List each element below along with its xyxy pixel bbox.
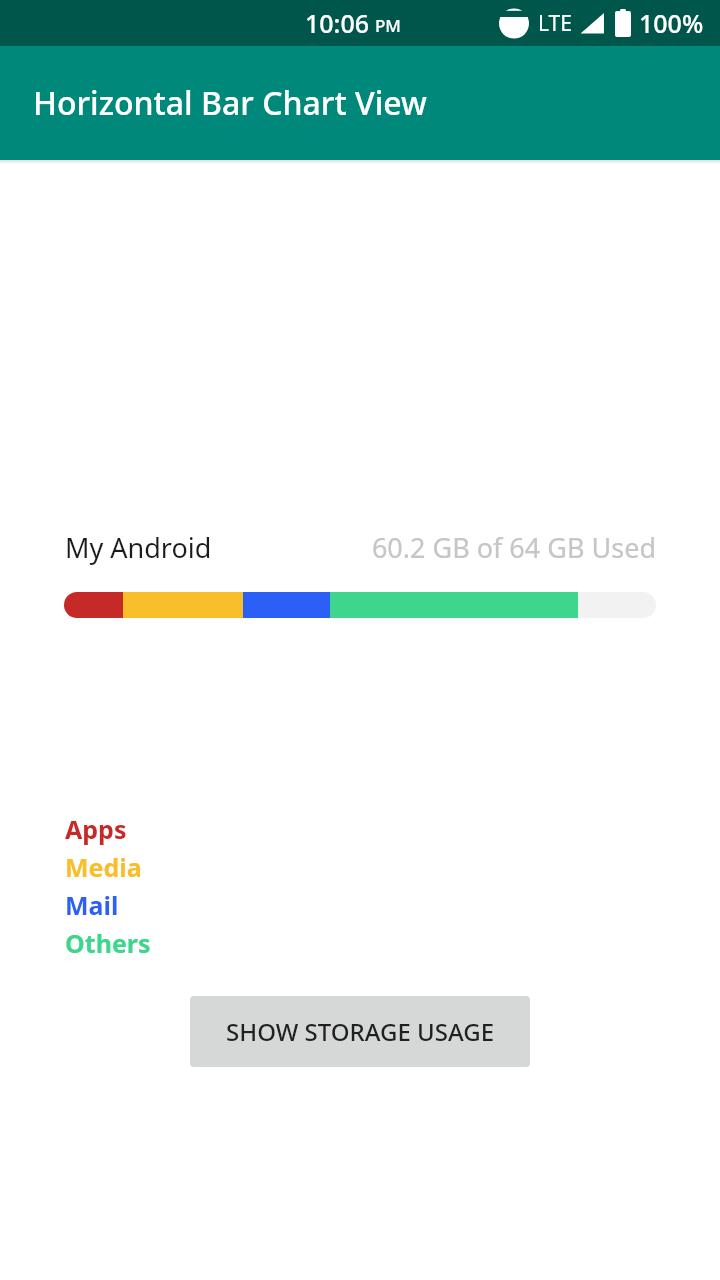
staticText: Apps — [65, 812, 127, 846]
staticText: 10:06 — [305, 6, 370, 40]
button[interactable]: SHOW STORAGE USAGE — [190, 996, 530, 1067]
button[interactable]: Mail — [65, 886, 119, 924]
staticText: 100% — [639, 6, 704, 40]
button[interactable]: Apps — [65, 810, 127, 848]
staticText: SHOW STORAGE USAGE — [226, 1015, 495, 1048]
button[interactable]: Media — [65, 848, 142, 886]
button[interactable]: Others — [65, 924, 151, 962]
staticText: 60.2 GB of 64 GB Used — [213, 529, 656, 566]
staticText: My Android — [65, 529, 212, 566]
button[interactable] — [64, 592, 656, 618]
staticText: Mail — [65, 888, 119, 922]
staticText: Media — [65, 850, 142, 884]
staticText: LTE — [538, 9, 572, 38]
staticText: PM — [375, 14, 401, 37]
staticText: Horizontal Bar Chart View — [33, 81, 427, 125]
staticText: Others — [65, 926, 151, 960]
